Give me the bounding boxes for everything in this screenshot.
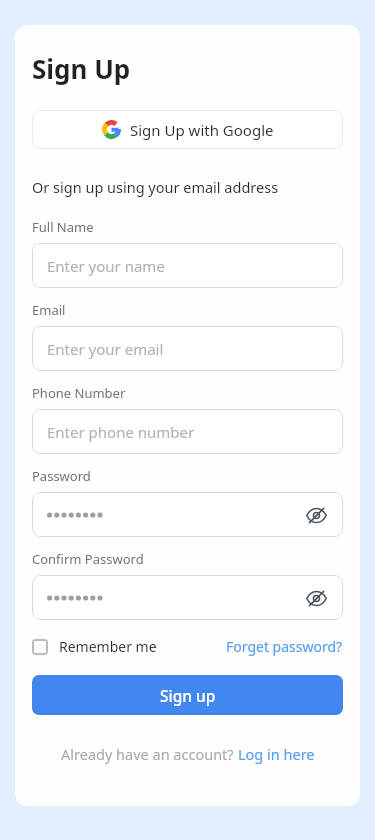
staticText: Enter your name xyxy=(47,256,165,276)
staticText: Remember me xyxy=(59,637,157,656)
button[interactable]: Show password xyxy=(301,583,331,613)
staticText: Confirm Password xyxy=(32,550,144,568)
staticText: Or sign up using your email address xyxy=(32,177,279,197)
button[interactable]: Show password xyxy=(32,492,343,537)
staticText: Full Name xyxy=(32,218,94,236)
staticText: Sign Up xyxy=(32,51,131,86)
staticText: Already have an account? xyxy=(61,744,238,764)
staticText: Sign Up with Google xyxy=(130,120,274,140)
button[interactable]: Enter your email xyxy=(32,326,343,371)
button[interactable]: Show password xyxy=(301,500,331,530)
staticText: Enter phone number xyxy=(47,422,195,442)
button[interactable]: Sign up xyxy=(32,675,343,715)
button[interactable]: Enter phone number xyxy=(32,409,343,454)
staticText: Email xyxy=(32,301,66,319)
button[interactable]: Enter your name xyxy=(32,243,343,288)
staticText: Password xyxy=(32,467,91,485)
staticText: Sign up xyxy=(160,685,216,706)
button[interactable]: Sign Up with Google xyxy=(32,110,343,149)
button[interactable]: Forget password? xyxy=(226,637,343,656)
button[interactable]: Show password xyxy=(32,575,343,620)
button[interactable]: Log in here xyxy=(238,744,315,764)
button[interactable]: Remember me xyxy=(32,637,157,656)
staticText: Phone Number xyxy=(32,384,126,402)
staticText: Enter your email xyxy=(47,339,164,359)
